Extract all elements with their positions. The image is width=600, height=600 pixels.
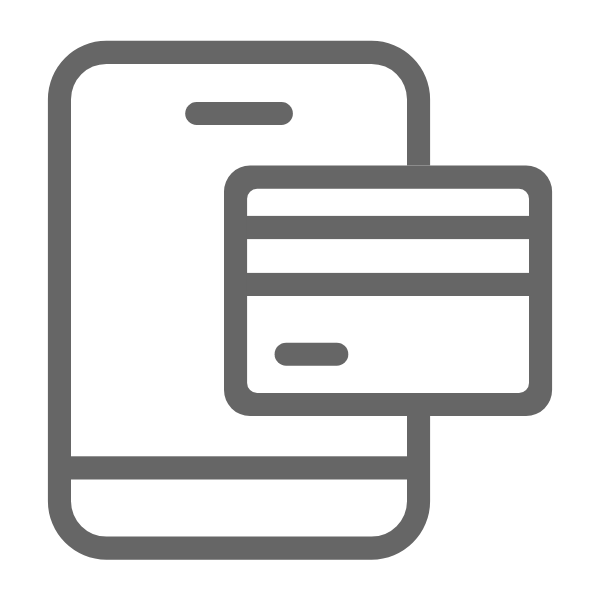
button[interactable]: Mobile payment with credit card — [0, 0, 600, 600]
